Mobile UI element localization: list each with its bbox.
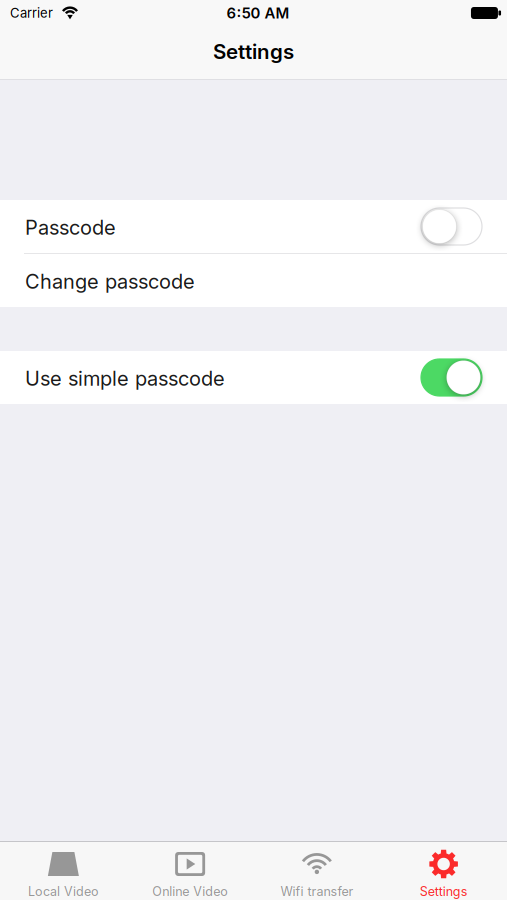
button[interactable]: Settings	[380, 842, 507, 900]
staticText: 6:50 AM	[226, 4, 289, 22]
staticText: Wifi transfer	[280, 884, 353, 899]
button[interactable]: Change passcode	[0, 254, 507, 307]
staticText: Local Video	[28, 884, 99, 899]
staticText: Passcode	[25, 215, 116, 240]
staticText: Online Video	[152, 884, 228, 899]
staticText: Carrier	[10, 5, 53, 21]
button[interactable]: Online Video	[127, 842, 254, 900]
staticText: Settings	[420, 884, 468, 899]
button[interactable]: Use simple passcode	[0, 351, 507, 404]
button[interactable]: Local Video	[0, 842, 127, 900]
button[interactable]: Wifi transfer	[253, 842, 380, 900]
staticText: Settings	[213, 39, 294, 64]
staticText: Change passcode	[25, 269, 195, 294]
button[interactable]: Passcode	[0, 200, 507, 253]
staticText: Use simple passcode	[25, 366, 225, 391]
